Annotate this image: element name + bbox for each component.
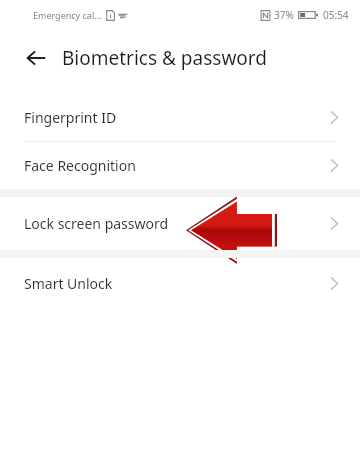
staticText: Fingerprint ID xyxy=(24,108,117,127)
staticText: Smart Unlock xyxy=(24,274,113,293)
button[interactable]: Smart Unlock xyxy=(0,258,360,308)
staticText: Lock screen password xyxy=(24,214,169,233)
button[interactable]: Back xyxy=(18,40,54,76)
staticText: 37% xyxy=(274,8,294,22)
staticText: 05:54 xyxy=(323,8,349,22)
staticText: Emergency cal... xyxy=(33,9,102,21)
button[interactable]: Lock screen password xyxy=(0,197,360,250)
staticText: Face Recognition xyxy=(24,156,136,175)
button[interactable]: Face Recognition xyxy=(0,142,360,189)
button[interactable]: Fingerprint ID xyxy=(0,94,360,141)
staticText: Biometrics & password xyxy=(62,45,267,71)
